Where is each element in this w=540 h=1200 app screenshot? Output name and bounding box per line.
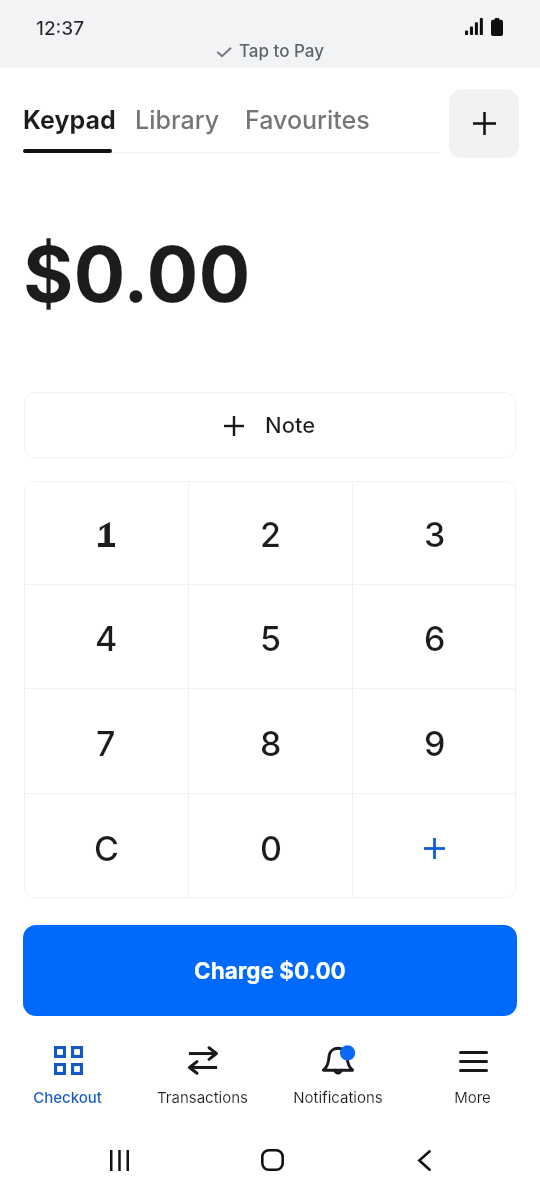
staticText: 3	[424, 514, 446, 555]
staticText: 2	[260, 514, 281, 555]
button[interactable]: 9	[353, 689, 516, 793]
button[interactable]: Notifications	[270, 1025, 405, 1106]
button[interactable]: Recent apps	[97, 1138, 141, 1182]
staticText: 8	[260, 723, 282, 764]
button[interactable]: Back	[402, 1138, 446, 1182]
staticText: Transactions	[157, 1088, 248, 1106]
staticText: Notifications	[293, 1088, 383, 1106]
staticText: Checkout	[33, 1088, 102, 1106]
button[interactable]: 6	[353, 585, 516, 688]
button[interactable]: Home	[250, 1138, 294, 1182]
staticText: C	[94, 828, 119, 869]
button[interactable]: Keypad	[23, 105, 116, 135]
staticText: Note	[265, 412, 316, 439]
button[interactable]: 2	[189, 481, 352, 584]
staticText: 9	[424, 723, 446, 764]
button[interactable]: C	[24, 794, 188, 898]
button[interactable]: 8	[189, 689, 352, 793]
button[interactable]: Transactions	[135, 1025, 270, 1106]
button[interactable]	[24, 481, 188, 584]
button[interactable]: Note	[24, 392, 516, 458]
staticText: Keypad	[23, 105, 116, 135]
button[interactable]: Checkout	[0, 1025, 135, 1106]
staticText: More	[454, 1088, 491, 1106]
button[interactable]: 0	[189, 794, 352, 898]
staticText: 6	[424, 618, 446, 659]
button[interactable]: Add	[449, 89, 519, 158]
staticText: $0.00	[23, 227, 251, 320]
button[interactable]	[353, 794, 516, 898]
staticText: Library	[135, 105, 220, 135]
staticText: Favourites	[245, 105, 370, 135]
button[interactable]: Charge $0.00	[23, 925, 517, 1016]
staticText: 4	[95, 618, 118, 659]
button[interactable]: 4	[24, 585, 188, 688]
button[interactable]: 3	[353, 481, 516, 584]
button[interactable]: More	[405, 1025, 540, 1106]
button[interactable]: 5	[189, 585, 352, 688]
button[interactable]: Library	[135, 105, 220, 135]
staticText: Charge $0.00	[194, 957, 346, 984]
staticText: 7	[96, 723, 116, 764]
button[interactable]: 7	[24, 689, 188, 793]
staticText: Tap to Pay	[239, 41, 324, 62]
staticText: 0	[260, 828, 282, 869]
staticText: 12:37	[36, 17, 85, 40]
button[interactable]: Favourites	[245, 105, 370, 135]
staticText: 5	[260, 618, 282, 659]
